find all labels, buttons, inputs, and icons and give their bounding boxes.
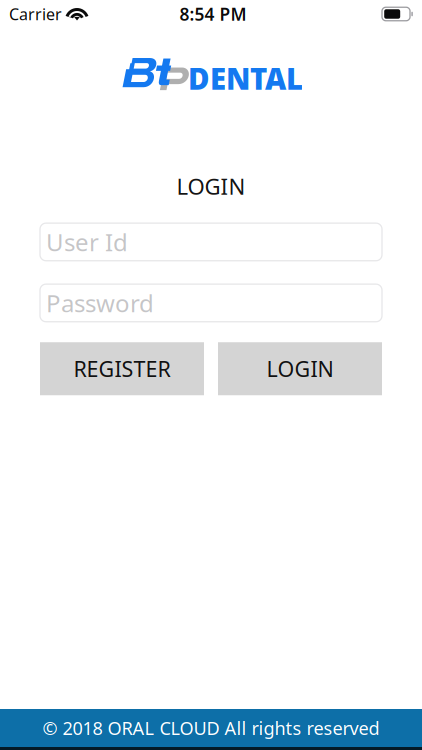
staticText: REGISTER [73, 354, 170, 383]
staticText: User Id [46, 226, 128, 258]
staticText: LOGIN [266, 354, 333, 383]
staticText: Password [46, 287, 154, 319]
button[interactable]: Password [40, 284, 382, 322]
button[interactable]: LOGIN [218, 342, 382, 395]
button[interactable]: User Id [40, 223, 382, 261]
staticText: DENTAL [188, 59, 303, 98]
staticText: © 2018 ORAL CLOUD All rights reserved [42, 716, 379, 740]
staticText: 8:54 PM [179, 2, 246, 25]
staticText: LOGIN [176, 171, 245, 201]
button[interactable]: REGISTER [40, 342, 204, 395]
staticText: Carrier [9, 3, 62, 25]
